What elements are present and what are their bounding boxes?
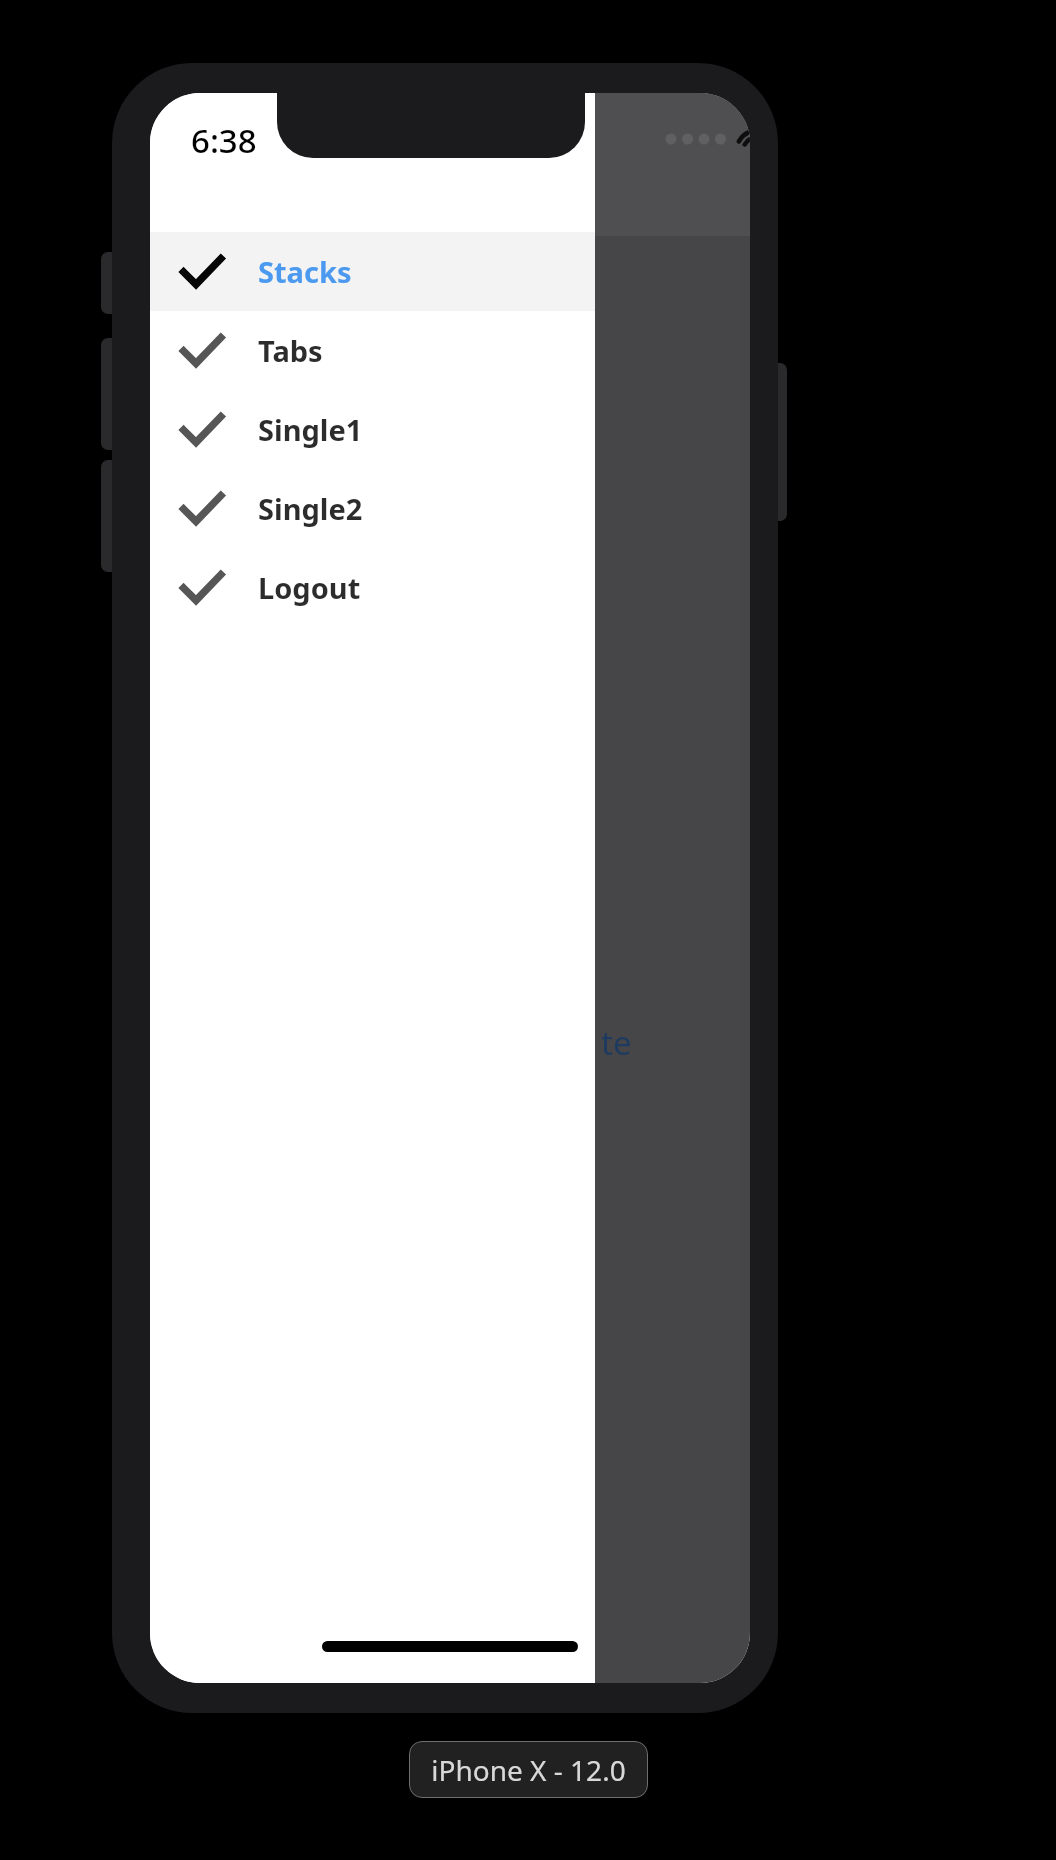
staticText: Tabs (258, 331, 323, 370)
button[interactable]: Single2 (150, 469, 595, 548)
button[interactable]: Logout (150, 548, 595, 627)
button[interactable]: Stacks (150, 232, 595, 311)
button[interactable]: Single1 (150, 390, 595, 469)
button[interactable]: Tabs (150, 311, 595, 390)
staticText: iPhone X - 12.0 (431, 1751, 626, 1789)
staticText: Single1 (258, 410, 363, 449)
button[interactable]: iPhone X - 12.0 (409, 1741, 648, 1798)
staticText: 6:38 (191, 118, 257, 163)
other: Status icons (665, 117, 750, 161)
staticText: Stacks (258, 252, 352, 291)
staticText: Single2 (258, 489, 363, 528)
staticText: Logout (258, 568, 361, 607)
staticText: te (601, 1020, 632, 1065)
